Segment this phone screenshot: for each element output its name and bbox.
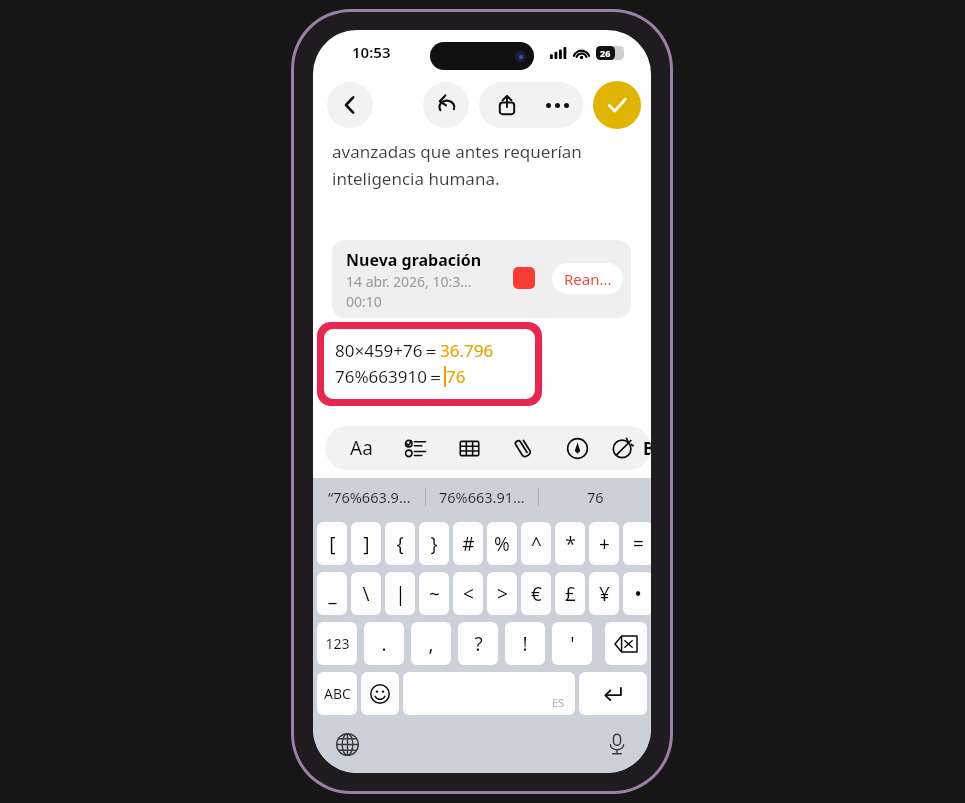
button[interactable]: “76%663.9... xyxy=(313,478,425,516)
staticText: Nueva grabación xyxy=(346,249,482,271)
button[interactable]: ! xyxy=(505,622,545,665)
button[interactable]: Dictate xyxy=(601,728,633,760)
staticText: < xyxy=(463,581,474,607)
button[interactable]: } xyxy=(419,522,449,565)
button[interactable]: { xyxy=(385,522,415,565)
staticText: “76%663.9... xyxy=(328,487,411,507)
staticText: ] xyxy=(363,531,370,557)
staticText: ~ xyxy=(429,581,440,607)
button[interactable]: | xyxy=(385,572,415,615)
button[interactable]: Nueva grabación xyxy=(332,240,631,318)
staticText: € xyxy=(531,581,542,607)
button[interactable]: Change keyboard xyxy=(331,728,363,760)
staticText: | xyxy=(395,581,406,607)
button[interactable]: Back xyxy=(327,82,373,128)
staticText: ES xyxy=(552,695,565,710)
staticText: • xyxy=(634,581,642,607)
button[interactable]: Share xyxy=(483,82,531,128)
staticText: [ xyxy=(329,531,336,557)
button[interactable]: > xyxy=(487,572,517,615)
button[interactable]: More options xyxy=(531,82,583,128)
staticText: ? xyxy=(474,631,483,657)
button[interactable]: Table xyxy=(443,426,495,470)
staticText: 76%663.91... xyxy=(439,487,525,507)
staticText: ^ xyxy=(531,531,542,557)
button[interactable]: , xyxy=(411,622,451,665)
staticText: ABC xyxy=(324,684,351,703)
staticText: 10:53 xyxy=(352,42,391,62)
button[interactable]: Checklist xyxy=(389,426,441,470)
staticText: 00:10 xyxy=(346,292,382,311)
button[interactable]: Emoji xyxy=(361,672,399,715)
button[interactable]: Return xyxy=(579,672,647,715)
button[interactable]: ? xyxy=(458,622,498,665)
button[interactable]: Attach xyxy=(497,426,549,470)
staticText: 26 xyxy=(600,47,611,59)
staticText: # xyxy=(462,531,475,557)
staticText: Rean... xyxy=(564,269,612,289)
staticText: * xyxy=(565,531,576,557)
button[interactable]: \ xyxy=(351,572,381,615)
staticText: , xyxy=(428,631,434,657)
button[interactable]: < xyxy=(453,572,483,615)
button[interactable]: ^ xyxy=(521,522,551,565)
staticText: ' xyxy=(570,631,575,657)
button[interactable]: Done xyxy=(593,81,641,129)
staticText: { xyxy=(396,531,404,557)
staticText: \ xyxy=(362,581,370,607)
staticText: 80×459+76＝ xyxy=(335,339,440,362)
staticText: + xyxy=(599,531,610,557)
button[interactable]: + xyxy=(589,522,619,565)
button[interactable]: • xyxy=(623,572,651,615)
staticText: _ xyxy=(328,581,337,607)
staticText: . xyxy=(381,631,387,657)
staticText: 76 xyxy=(587,487,604,507)
staticText: 36.796 xyxy=(440,339,494,362)
button[interactable]: * xyxy=(555,522,585,565)
button[interactable]: Stop xyxy=(513,267,535,289)
staticText: = xyxy=(633,531,644,557)
button[interactable]: £ xyxy=(555,572,585,615)
staticText: ¥ xyxy=(599,581,610,607)
button[interactable]: 123 xyxy=(317,622,357,665)
button[interactable]: 76 xyxy=(539,478,651,516)
button[interactable]: Text format xyxy=(335,426,387,470)
button[interactable]: _ xyxy=(317,572,347,615)
staticText: Aa xyxy=(350,435,373,461)
staticText: £ xyxy=(565,581,576,607)
button[interactable]: = xyxy=(623,522,651,565)
staticText: 14 abr. 2026, 10:3... xyxy=(346,272,472,291)
staticText: > xyxy=(497,581,508,607)
button[interactable]: € xyxy=(521,572,551,615)
staticText: inteligencia humana. xyxy=(332,167,500,190)
button[interactable]: . xyxy=(364,622,404,665)
button[interactable]: [ xyxy=(317,522,347,565)
button[interactable]: Backspace xyxy=(605,622,647,665)
staticText: } xyxy=(430,531,438,557)
button[interactable]: Space xyxy=(403,672,575,715)
button[interactable]: ABC xyxy=(317,672,357,715)
button[interactable]: ¥ xyxy=(589,572,619,615)
button[interactable]: Rean... xyxy=(552,263,623,294)
button[interactable]: Smart scribble xyxy=(597,426,649,470)
staticText: 76 xyxy=(446,365,466,388)
button[interactable]: ] xyxy=(351,522,381,565)
staticText: avanzadas que antes requerían xyxy=(332,140,582,163)
button[interactable]: 76%663.91... xyxy=(426,478,538,516)
button[interactable]: Undo xyxy=(423,82,469,128)
button[interactable]: Markup xyxy=(551,426,603,470)
button[interactable]: % xyxy=(487,522,517,565)
staticText: ! xyxy=(522,631,528,657)
staticText: 76%663910＝ xyxy=(335,365,444,388)
button[interactable]: # xyxy=(453,522,483,565)
staticText: % xyxy=(494,531,510,557)
button[interactable]: ' xyxy=(552,622,592,665)
button[interactable]: ~ xyxy=(419,572,449,615)
staticText: B xyxy=(643,437,651,460)
staticText: 123 xyxy=(325,634,350,653)
